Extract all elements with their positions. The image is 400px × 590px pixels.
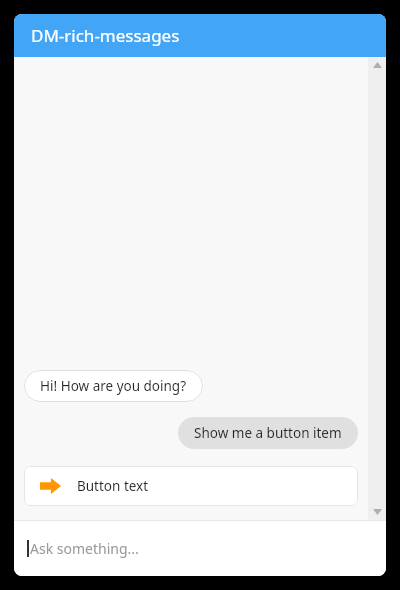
button[interactable]: Scroll bar (368, 57, 386, 520)
other: Arrow (40, 478, 61, 494)
button[interactable]: Arrow (24, 466, 358, 506)
button[interactable]: Show me a button item (178, 417, 358, 449)
button[interactable]: Ask something... (14, 521, 386, 576)
staticText: Show me a button item (194, 424, 342, 442)
staticText: Button text (77, 477, 149, 495)
staticText: DM-rich-messages (31, 24, 180, 47)
button[interactable]: DM-rich-messages (14, 14, 386, 57)
button[interactable]: Hi! How are you doing? (24, 370, 203, 402)
staticText: Ask something... (30, 539, 139, 558)
staticText: Hi! How are you doing? (40, 377, 187, 395)
